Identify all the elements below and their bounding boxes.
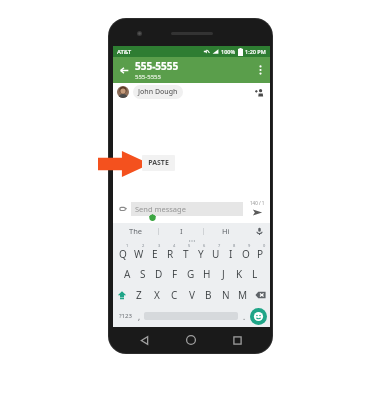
staticText: N	[222, 288, 230, 302]
button[interactable]: 2	[131, 242, 147, 263]
staticText: ,	[138, 311, 141, 322]
staticText: 2	[142, 243, 145, 248]
staticText: K	[236, 267, 243, 281]
staticText: C	[171, 288, 178, 302]
staticText: PASTE	[148, 158, 169, 168]
staticText: 3	[158, 243, 161, 248]
staticText: A	[124, 267, 131, 281]
staticText: T	[183, 247, 189, 261]
staticText: 555-5555	[135, 59, 179, 73]
staticText: 100%	[221, 48, 236, 55]
staticText: Hi	[222, 226, 230, 236]
staticText: 5	[188, 243, 191, 248]
staticText: F	[172, 267, 178, 281]
button[interactable]: Send	[246, 200, 268, 218]
button[interactable]: 0	[253, 242, 268, 263]
staticText: 140 / 1	[250, 200, 265, 206]
button[interactable]: N	[217, 284, 234, 305]
button[interactable]: Z	[130, 284, 148, 305]
button[interactable]: 8	[223, 242, 238, 263]
staticText: Z	[136, 288, 142, 302]
staticText: Y	[198, 247, 204, 261]
staticText: AT&T	[117, 48, 132, 56]
button[interactable]: Attach	[117, 203, 129, 215]
staticText: E	[152, 247, 158, 261]
button[interactable]: X	[148, 284, 166, 305]
button[interactable]: B	[200, 284, 217, 305]
button[interactable]: Emoji	[250, 308, 267, 325]
button[interactable]: Backspace	[251, 284, 270, 305]
button[interactable]: S	[135, 263, 151, 284]
staticText: H	[203, 267, 211, 281]
staticText: V	[189, 288, 195, 302]
button[interactable]: 3	[147, 242, 163, 263]
staticText: R	[167, 247, 174, 261]
staticText: O	[242, 247, 250, 261]
button[interactable]: 1	[115, 242, 131, 263]
button[interactable]: 5	[178, 242, 193, 263]
button[interactable]: H	[199, 263, 215, 284]
button[interactable]: Shift	[113, 284, 130, 305]
button[interactable]: F	[167, 263, 183, 284]
staticText: P	[257, 247, 264, 261]
staticText: 6	[203, 243, 206, 248]
button[interactable]: L	[247, 263, 263, 284]
button[interactable]: ?123	[116, 305, 134, 327]
staticText: I	[180, 226, 183, 236]
button[interactable]: 7	[208, 242, 223, 263]
button[interactable]: J	[215, 263, 231, 284]
staticText: G	[187, 267, 195, 281]
button[interactable]: Send message	[131, 202, 243, 216]
staticText: Send message	[131, 204, 186, 214]
staticText: M	[238, 288, 248, 302]
button[interactable]: ,	[134, 305, 144, 327]
button[interactable]: Add person	[251, 84, 267, 100]
staticText: 8	[233, 243, 236, 248]
button[interactable]: M	[234, 284, 251, 305]
button[interactable]: PASTE	[142, 155, 175, 171]
staticText: 555-5555	[135, 73, 161, 81]
button[interactable]: G	[183, 263, 199, 284]
button[interactable]: The	[113, 223, 158, 239]
button[interactable]: More options	[250, 57, 270, 83]
staticText: W	[134, 247, 144, 261]
staticText: B	[205, 288, 212, 302]
button[interactable]: 4	[163, 242, 178, 263]
button[interactable]: Back	[133, 329, 155, 351]
staticText: L	[252, 267, 258, 281]
button[interactable]: C	[166, 284, 183, 305]
button[interactable]: 9	[238, 242, 253, 263]
staticText: Q	[119, 247, 127, 261]
staticText: I	[229, 247, 233, 261]
button[interactable]: Recent apps	[226, 329, 248, 351]
button[interactable]: K	[231, 263, 247, 284]
button[interactable]: V	[183, 284, 200, 305]
button[interactable]: Home	[180, 329, 202, 351]
button[interactable]: A	[120, 263, 135, 284]
staticText: ?123	[119, 312, 132, 320]
staticText: S	[140, 267, 146, 281]
button[interactable]: Hi	[204, 223, 248, 239]
staticText: The	[129, 226, 143, 236]
staticText: J	[222, 267, 225, 281]
button[interactable]: D	[151, 263, 167, 284]
button[interactable]: John Dough	[113, 83, 270, 101]
button[interactable]: Back	[113, 57, 135, 83]
staticText: 7	[218, 243, 221, 248]
staticText: 1	[126, 243, 129, 248]
staticText: X	[154, 288, 160, 302]
staticText: 9	[248, 243, 251, 248]
button[interactable]: .	[238, 305, 250, 327]
staticText: U	[212, 247, 220, 261]
staticText: D	[155, 267, 163, 281]
staticText: .	[243, 311, 246, 322]
staticText: 4	[173, 243, 176, 248]
button[interactable]: I	[159, 223, 203, 239]
staticText: 0	[263, 243, 266, 248]
button[interactable]: Voice input	[248, 223, 270, 239]
button[interactable]: 6	[193, 242, 208, 263]
staticText: John Dough	[138, 87, 178, 97]
staticText: 1:20 PM	[245, 48, 266, 55]
